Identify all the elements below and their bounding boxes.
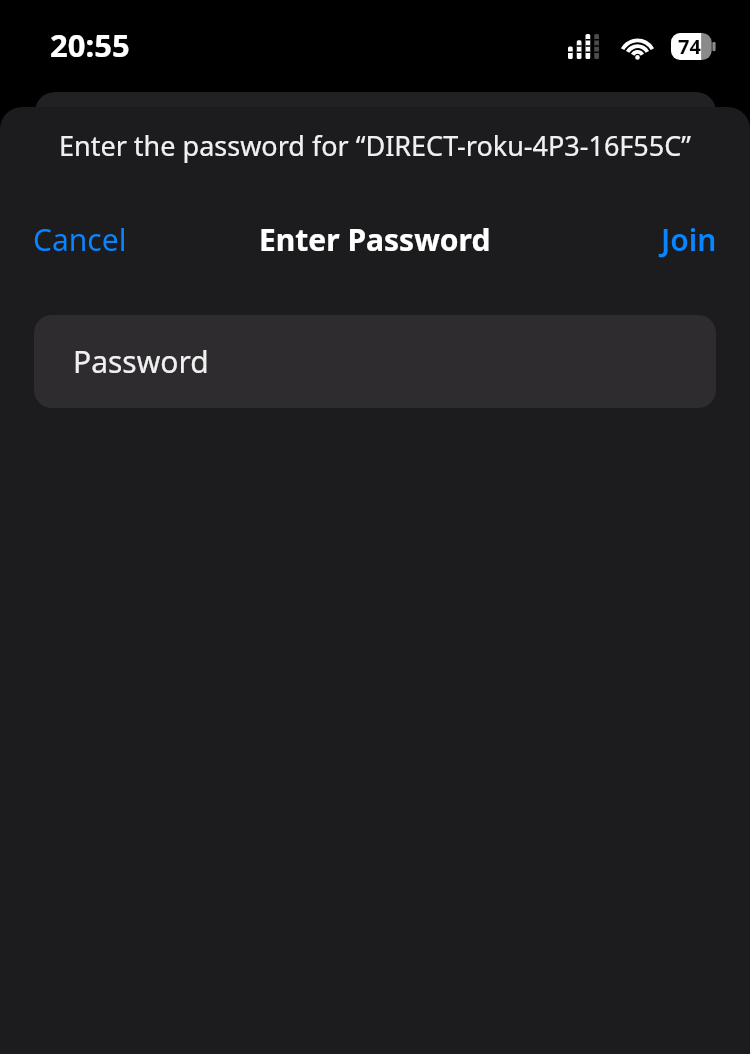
staticText: 74 — [678, 33, 701, 60]
button[interactable]: Join — [647, 211, 731, 268]
button[interactable]: Password — [34, 315, 716, 408]
staticText: Join — [661, 219, 717, 260]
staticText: Enter Password — [259, 219, 491, 260]
staticText: Enter the password for “DIRECT-roku-4P3-… — [16, 127, 734, 164]
button[interactable]: Cancel — [19, 211, 141, 268]
staticText: 20:55 — [50, 24, 130, 66]
staticText: Cancel — [33, 219, 127, 260]
staticText: Password — [73, 341, 209, 382]
other: Battery 74 percent — [671, 33, 717, 60]
other: Cellular signal — [568, 34, 603, 59]
other: Wi-Fi — [619, 34, 656, 60]
